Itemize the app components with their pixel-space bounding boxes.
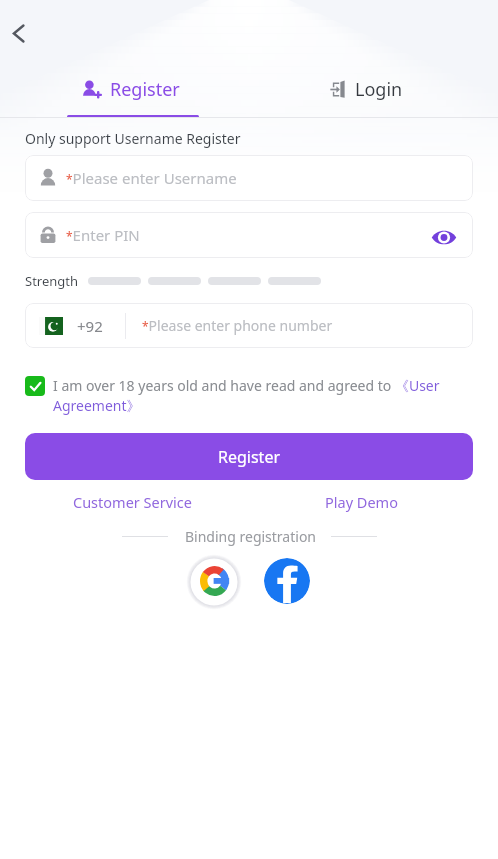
button[interactable]: Sign in with Facebook: [264, 558, 310, 604]
staticText: Login: [355, 77, 403, 102]
staticText: *Enter PIN: [66, 225, 140, 245]
staticText: +92: [77, 316, 103, 336]
staticText: Binding registration: [185, 527, 317, 546]
button[interactable]: *Enter PIN: [25, 212, 473, 258]
staticText: Register: [218, 446, 281, 468]
button[interactable]: Register: [0, 51, 249, 76]
button[interactable]: Back: [1, 16, 36, 51]
button[interactable]: Sign in with Google: [189, 556, 239, 606]
staticText: *Please enter phone number: [142, 316, 333, 335]
button[interactable]: *Please enter Username: [25, 155, 473, 201]
staticText: *Please enter Username: [66, 168, 237, 188]
button[interactable]: Register: [25, 433, 473, 480]
staticText: I am over 18 years old and have read and…: [53, 376, 473, 415]
staticText: Register: [110, 77, 180, 102]
staticText: Play Demo: [325, 492, 398, 512]
button[interactable]: Show password: [428, 221, 460, 253]
staticText: Strength: [25, 272, 79, 290]
staticText: Only support Username Register: [25, 129, 241, 148]
staticText: Customer Service: [73, 492, 192, 512]
button[interactable]: Customer Service: [0, 491, 249, 513]
button[interactable]: +92: [25, 303, 125, 348]
button[interactable]: Agree to terms: [25, 376, 45, 396]
button[interactable]: Play Demo: [249, 491, 498, 513]
button[interactable]: Login: [249, 51, 498, 76]
